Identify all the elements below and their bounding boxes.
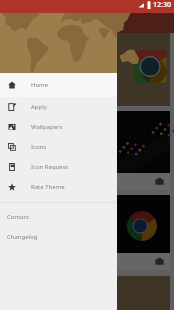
button[interactable]: Home — [0, 73, 117, 97]
button[interactable]: Black — [10, 253, 164, 270]
button[interactable]: Dark — [10, 173, 164, 190]
staticText: Apply — [31, 103, 47, 111]
other: Save — [155, 257, 164, 266]
button[interactable]: Icon Request — [0, 157, 117, 177]
staticText: Dark — [10, 177, 26, 187]
button[interactable]: Changelog — [0, 227, 117, 247]
button[interactable]: Apply — [0, 97, 117, 117]
staticText: Wallpapers — [31, 123, 63, 131]
staticText: Icons — [31, 143, 47, 151]
staticText: Changelog — [7, 233, 38, 241]
button[interactable]: Icons — [0, 137, 117, 157]
button[interactable]: Wallpapers — [0, 117, 117, 137]
button[interactable]: Contact — [0, 207, 117, 227]
staticText: Contact — [7, 213, 29, 221]
button[interactable]: Rate Theme — [0, 177, 117, 197]
staticText: Rate Theme — [31, 183, 65, 191]
other: Save — [155, 177, 164, 186]
staticText: 12:30 — [153, 0, 171, 10]
staticText: Icon Request — [31, 163, 68, 171]
staticText: Home — [31, 81, 49, 89]
